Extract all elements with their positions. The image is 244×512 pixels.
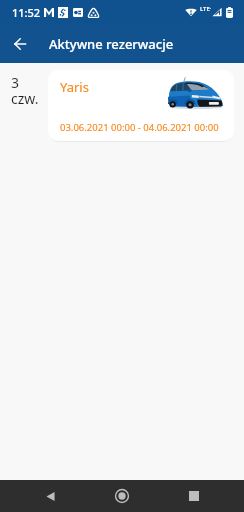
button[interactable]: Yaris bbox=[48, 70, 234, 141]
staticText: LTE+ bbox=[200, 5, 211, 13]
button[interactable]: Back bbox=[28, 480, 72, 512]
staticText: 3 bbox=[11, 73, 20, 92]
button[interactable]: Back bbox=[0, 24, 40, 63]
button[interactable]: Recent apps bbox=[172, 480, 216, 512]
staticText: 11:52 bbox=[12, 5, 41, 20]
button[interactable]: Home bbox=[100, 480, 144, 512]
staticText: Aktywne rezerwacje bbox=[49, 35, 174, 53]
staticText: czw. bbox=[11, 89, 39, 108]
staticText: 03.06.2021 00:00 - 04.06.2021 00:00 bbox=[60, 121, 219, 134]
staticText: Yaris bbox=[60, 78, 89, 96]
